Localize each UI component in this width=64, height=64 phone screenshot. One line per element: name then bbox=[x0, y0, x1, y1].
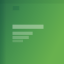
button[interactable] bbox=[0, 0, 64, 64]
